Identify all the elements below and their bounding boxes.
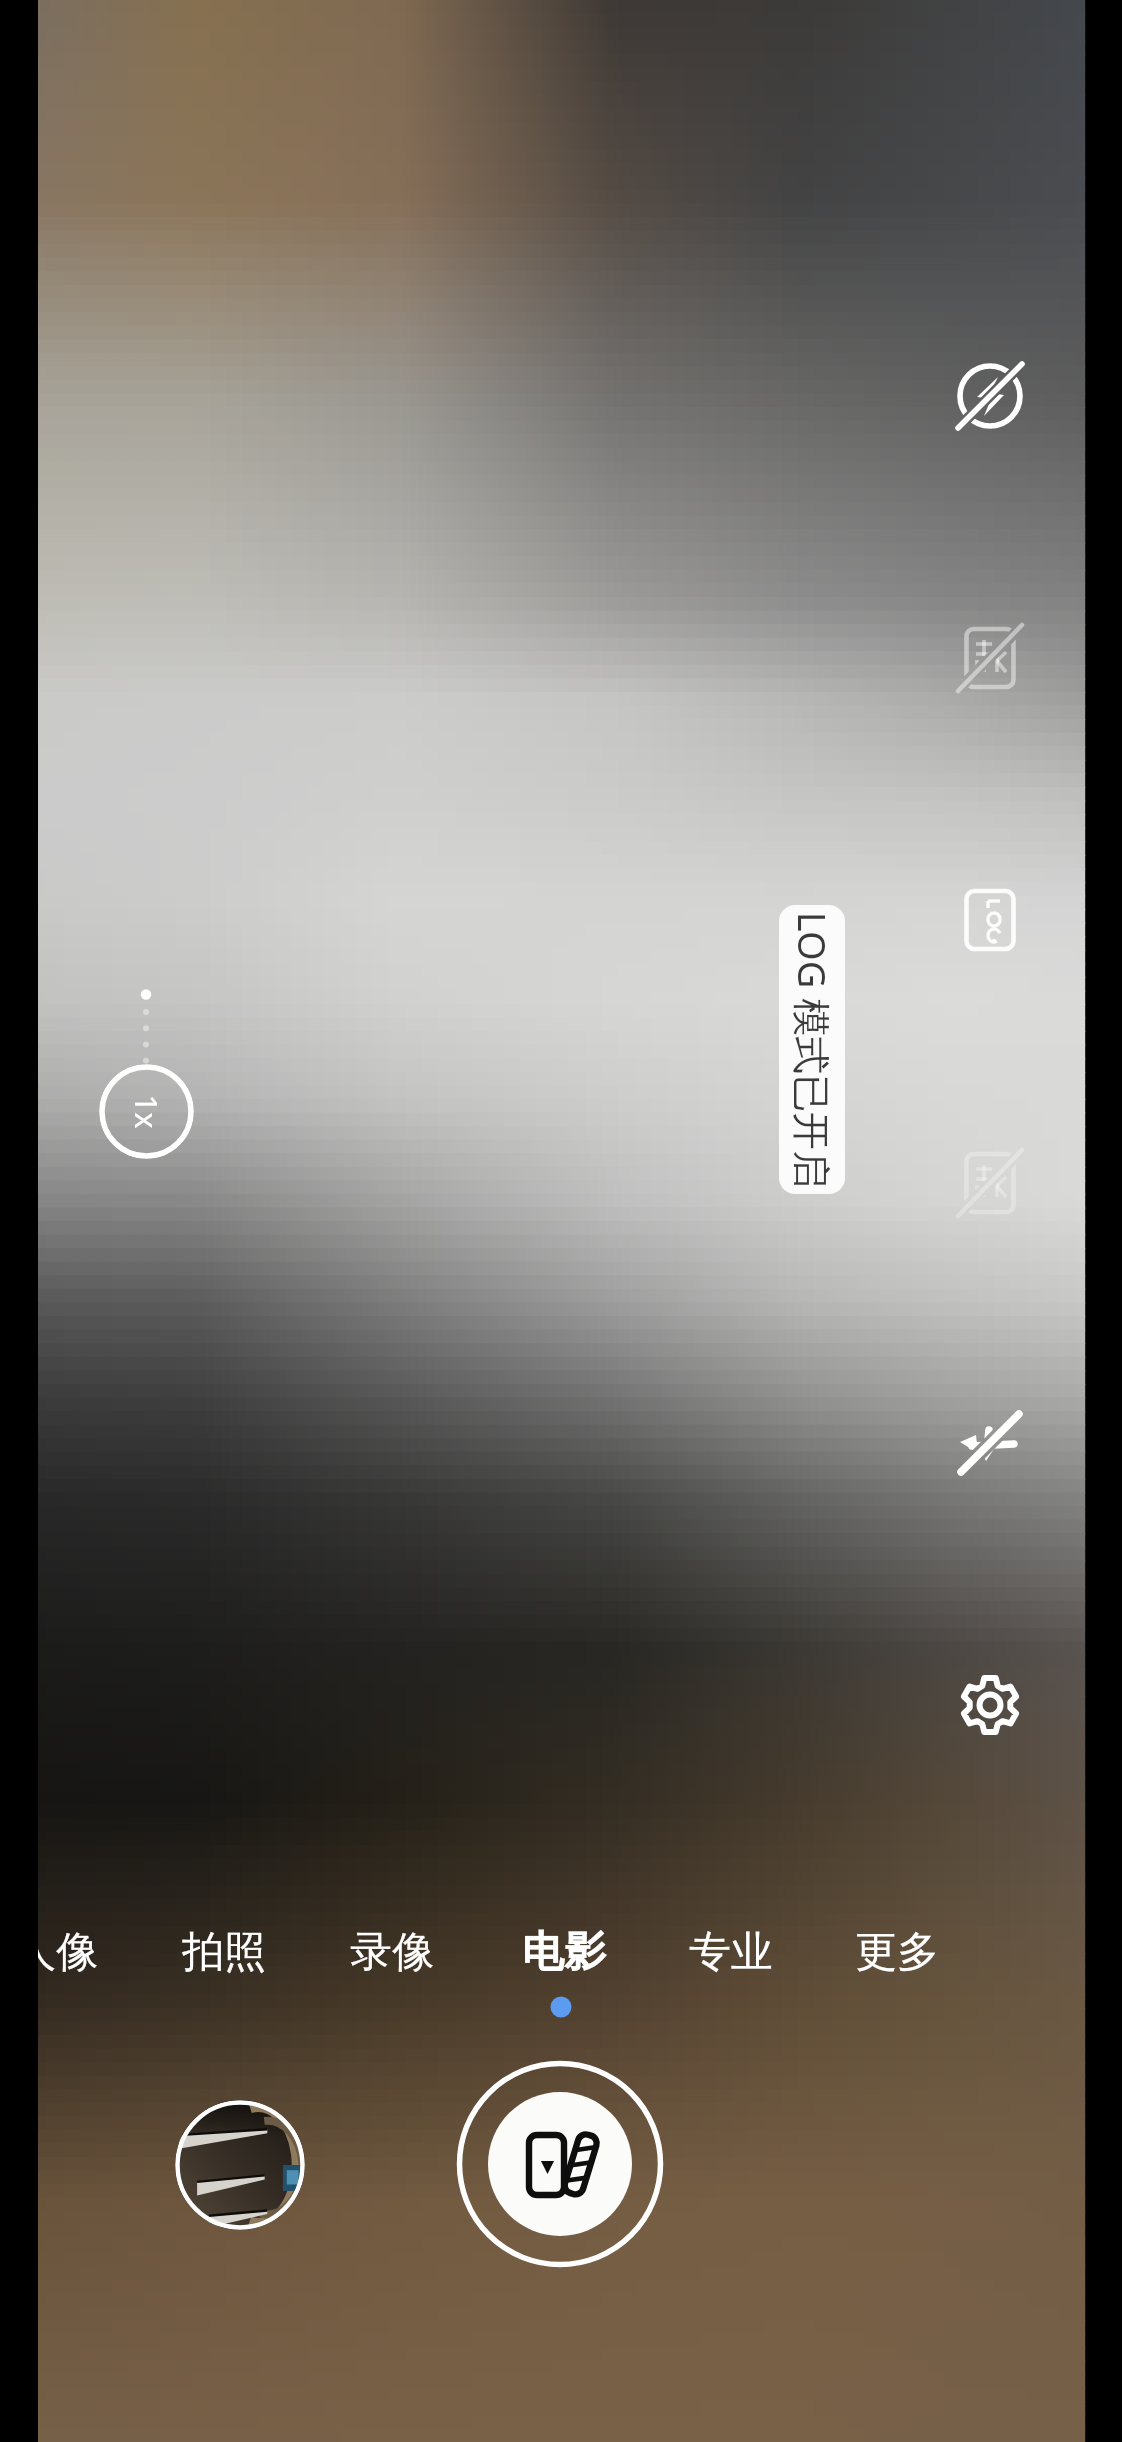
staticText: 拍照 bbox=[182, 1926, 266, 1979]
button[interactable]: 录像 bbox=[322, 1907, 462, 1997]
button[interactable]: Stabilisation off bbox=[950, 1403, 1030, 1483]
button[interactable]: Settings bbox=[950, 1665, 1030, 1745]
button[interactable]: 更多 bbox=[827, 1907, 967, 1997]
button[interactable]: LOG 模式已开启 bbox=[779, 905, 845, 1194]
button[interactable]: 人像 bbox=[38, 1907, 126, 1997]
button[interactable]: HDR off bbox=[950, 618, 1030, 698]
staticText: 录像 bbox=[350, 1926, 434, 1979]
button[interactable]: 1x bbox=[99, 1064, 194, 1159]
button[interactable]: 专业 bbox=[661, 1907, 801, 1997]
staticText: 电影 bbox=[522, 1926, 606, 1979]
button[interactable]: Filters off bbox=[950, 1143, 1030, 1223]
button[interactable]: Gallery bbox=[175, 2100, 305, 2230]
button[interactable]: LOG mode bbox=[950, 880, 1030, 960]
button[interactable]: 拍照 bbox=[154, 1907, 294, 1997]
staticText: 1x bbox=[125, 1094, 167, 1129]
button[interactable]: 电影 bbox=[494, 1907, 634, 1997]
staticText: 更多 bbox=[855, 1926, 939, 1979]
staticText: 人像 bbox=[38, 1926, 98, 1979]
button[interactable]: Shutter bbox=[456, 2060, 664, 2268]
staticText: 专业 bbox=[689, 1926, 773, 1979]
staticText: LOG 模式已开启 bbox=[786, 911, 838, 1188]
button[interactable]: Flash off bbox=[950, 356, 1030, 436]
